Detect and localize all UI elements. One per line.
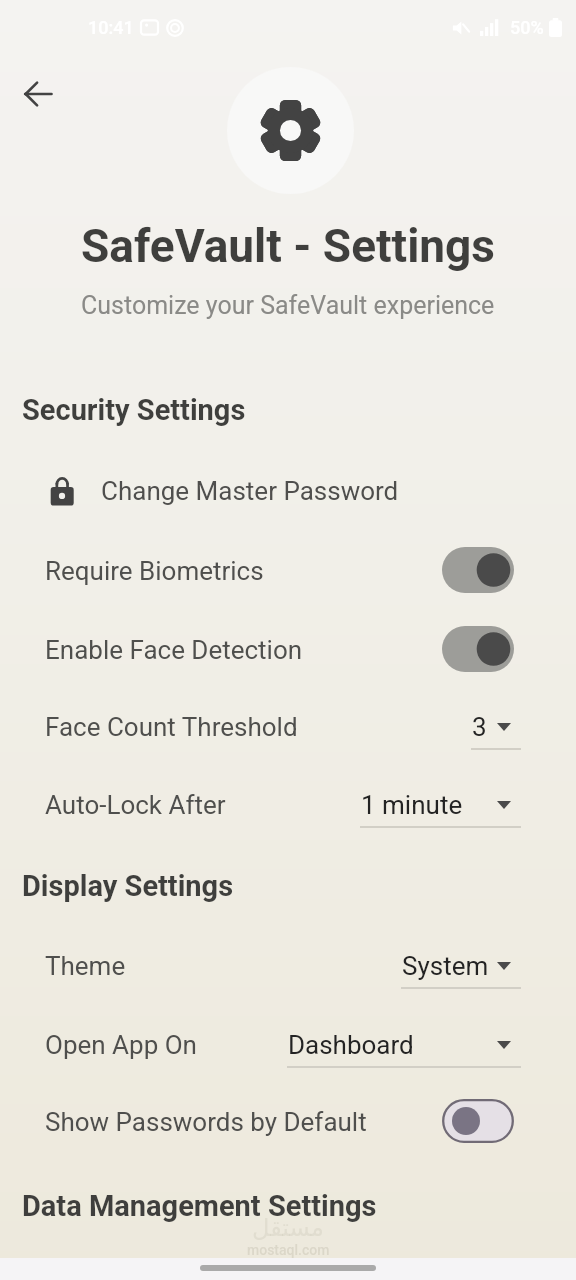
staticText: Show Passwords by Default: [45, 1107, 367, 1137]
staticText: System: [402, 951, 489, 981]
staticText: Open App On: [45, 1030, 197, 1060]
button[interactable]: Auto-Lock After: [0, 776, 576, 834]
button[interactable]: Show Passwords by Default: [0, 1093, 576, 1151]
staticText: Face Count Threshold: [45, 712, 298, 742]
button[interactable]: Enable Face Detection: [0, 621, 576, 679]
button[interactable]: Theme: [0, 937, 576, 995]
staticText: Require Biometrics: [45, 556, 264, 586]
staticText: Display Settings: [22, 869, 234, 903]
staticText: Security Settings: [22, 393, 246, 427]
button[interactable]: Require Biometrics: [0, 542, 576, 600]
staticText: 50%: [510, 17, 544, 38]
staticText: Theme: [45, 951, 126, 981]
staticText: 10:41: [88, 17, 134, 38]
staticText: مستقل: [252, 1214, 324, 1242]
button[interactable]: Open App On: [0, 1016, 576, 1074]
staticText: Change Master Password: [101, 476, 399, 506]
staticText: mostaql.com: [247, 1242, 330, 1258]
staticText: SafeVault - Settings: [81, 219, 495, 273]
button[interactable]: Face Count Threshold: [0, 698, 576, 756]
staticText: Auto-Lock After: [45, 790, 226, 820]
staticText: Customize your SafeVault experience: [81, 291, 495, 320]
staticText: Dashboard: [288, 1030, 414, 1060]
staticText: Data Management Settings: [22, 1189, 377, 1223]
button[interactable]: Back: [12, 68, 64, 120]
staticText: 1 minute: [361, 790, 463, 820]
staticText: 3: [472, 712, 487, 742]
button[interactable]: Change Master Password: [0, 462, 576, 520]
button[interactable]: App settings: [227, 67, 354, 194]
staticText: Enable Face Detection: [45, 635, 303, 665]
